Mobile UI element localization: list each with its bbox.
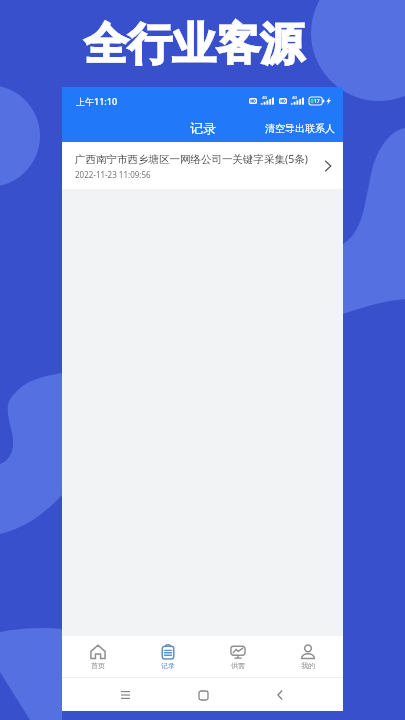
staticText: 上午11:10 [76,95,118,107]
button[interactable]: 广西南宁市西乡塘区一网络公司一关键字采集(5条) [62,142,343,189]
button[interactable]: 记录 [133,636,203,677]
staticText: 供需 [231,661,245,670]
staticText: 4G [292,95,298,100]
button[interactable]: Recent apps [110,680,140,710]
button[interactable]: 我的 [273,636,343,677]
staticText: 记录 [190,120,216,136]
staticText: 17 [314,98,320,105]
staticText: 2022-11-23 11:09:56 [75,169,151,180]
button[interactable]: 供需 [203,636,273,677]
staticText: 4G [262,95,268,100]
button[interactable]: Home [188,680,218,710]
staticText: 我的 [301,661,315,670]
staticText: 记录 [161,661,175,670]
button[interactable]: Back [265,680,295,710]
staticText: 全行业客源 [84,17,304,72]
button[interactable]: 清空导出联系人 [257,118,343,139]
staticText: 广西南宁市西乡塘区一网络公司一关键字采集(5条) [75,152,308,166]
staticText: 清空导出联系人 [265,122,335,135]
button[interactable]: 首页 [62,636,133,677]
staticText: 首页 [91,661,105,670]
